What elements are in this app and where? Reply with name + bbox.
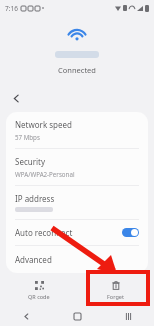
button[interactable]: QR code: [20, 278, 58, 303]
button[interactable]: Network speed: [6, 112, 148, 148]
staticText: QR code: [28, 293, 50, 300]
button[interactable]: IP address: [6, 186, 148, 219]
staticText: Security: [15, 156, 46, 167]
button[interactable]: Advanced: [6, 246, 148, 273]
button[interactable]: Home: [52, 306, 103, 326]
button[interactable]: Recents: [103, 306, 154, 326]
staticText: WPA/WPA2-Personal: [15, 170, 75, 178]
staticText: Network speed: [15, 119, 72, 130]
staticText: 57 Mbps: [15, 133, 40, 141]
button[interactable]: Back: [7, 89, 25, 107]
button[interactable]: Forget: [99, 278, 132, 303]
button[interactable]: Auto reconnect: [6, 220, 148, 245]
button[interactable]: Back: [0, 306, 52, 326]
staticText: 7:16: [5, 4, 18, 13]
staticText: Forget: [107, 293, 124, 300]
staticText: Advanced: [15, 254, 52, 265]
staticText: IP address: [15, 193, 55, 204]
button[interactable]: Security: [6, 149, 148, 185]
staticText: Connected: [58, 65, 96, 75]
staticText: Auto reconnect: [15, 227, 73, 238]
